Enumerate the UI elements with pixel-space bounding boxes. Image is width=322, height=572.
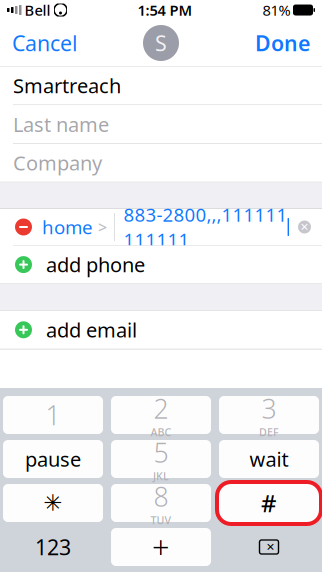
button[interactable]: Cancel [0,21,90,65]
button[interactable]: Done [243,21,322,65]
staticText: S [155,29,167,57]
button[interactable]: Contact photo [143,25,179,61]
button[interactable]: pause [3,440,103,478]
staticText: Smartreach [13,72,121,99]
staticText: pause [25,446,81,472]
button[interactable]: 5 [111,440,211,478]
staticText: wait [249,446,288,472]
button[interactable]: Star [3,484,103,522]
staticText: add email [46,316,137,343]
staticText: ✕ [300,221,309,233]
staticText: ✕ [266,541,275,553]
staticText: JKL [153,469,169,483]
button[interactable]: Delete [219,528,319,566]
button[interactable]: 1 [3,396,103,434]
button[interactable]: Pound [219,484,319,522]
button[interactable]: 8 [111,484,211,522]
staticText: DEF [259,425,279,439]
staticText: + [152,527,170,567]
staticText: > [98,216,107,238]
button[interactable]: Remove phone [0,218,42,235]
button[interactable]: Clear text [298,220,322,233]
button[interactable]: 3 [219,396,319,434]
staticText: Bell [24,0,50,20]
button[interactable]: + [111,528,211,566]
staticText: Last name [13,111,109,137]
staticText: Done [255,29,310,57]
button[interactable]: 123 [3,528,103,566]
staticText: 1 [45,397,60,433]
button[interactable]: 2 [111,396,211,434]
button[interactable]: wait [219,440,319,478]
staticText: 2 [153,391,168,426]
button[interactable]: home [42,215,114,239]
staticText: add phone [46,251,145,278]
staticText: 81% [262,0,290,20]
staticText: ✳ [43,490,62,516]
staticText: home [42,215,93,239]
staticText: 5 [153,435,168,470]
button[interactable]: add phone [0,246,322,284]
staticText: TUV [150,513,171,527]
staticText: 3 [261,391,276,426]
staticText: Cancel [12,29,78,57]
staticText: 883-2800,,,111111111111 [124,202,288,252]
staticText: Company [13,149,102,176]
button[interactable]: add email [0,311,322,349]
staticText: # [261,487,277,519]
staticText: 1:54 PM [137,0,192,20]
staticText: 8 [153,479,168,514]
staticText: 123 [35,533,71,561]
staticText: ABC [150,425,171,439]
